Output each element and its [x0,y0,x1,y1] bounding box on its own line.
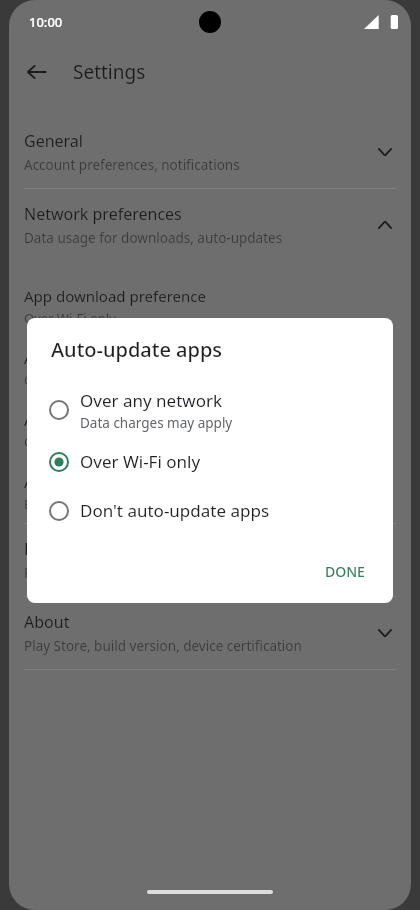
staticText: Settings [73,59,146,85]
staticText: General [24,130,83,152]
button[interactable]: App download preference [9,275,411,337]
staticText: Auto-update apps [51,336,223,363]
staticText: About [24,611,70,633]
button[interactable]: Over any network [27,383,393,437]
button[interactable]: Over Wi-Fi only [27,437,393,486]
button[interactable]: Auto-update apps [9,337,411,399]
button[interactable]: Don't auto-update apps [27,486,393,535]
staticText: Network preferences [24,203,182,225]
button[interactable]: Auto-play videos [9,399,411,461]
staticText: App download preference [24,286,206,306]
staticText: Don't auto-update apps [80,499,270,522]
button[interactable]: General [9,116,411,188]
staticText: Over Wi-Fi only [80,450,201,473]
button[interactable]: Back [17,52,57,92]
button[interactable]: Network preferences [9,189,411,261]
staticText: Parental control, parent guide [24,564,214,582]
staticText: Family [24,538,73,560]
staticText: Auto-update apps [24,348,151,368]
staticText: Over Wi-Fi only [24,371,116,389]
button[interactable]: Auto-update Play Store [9,461,411,523]
button[interactable]: About [9,597,411,669]
staticText: Play Store, build version, device certif… [24,637,302,655]
staticText: Over any network [80,389,223,412]
button[interactable]: DONE [315,554,375,589]
staticText: Data charges may apply [80,414,233,432]
staticText: 10:00 [29,13,63,31]
staticText: Account preferences, notifications [24,156,240,174]
staticText: Over Wi-Fi only [24,309,116,327]
staticText: Auto-play videos [24,410,141,430]
staticText: Over Wi-Fi only [24,433,116,451]
staticText: Auto-update Play Store [24,472,187,492]
staticText: Enabled [24,495,74,513]
staticText: DONE [325,562,365,581]
staticText: Data usage for downloads, auto-updates [24,229,283,247]
button[interactable]: Family [9,524,411,596]
